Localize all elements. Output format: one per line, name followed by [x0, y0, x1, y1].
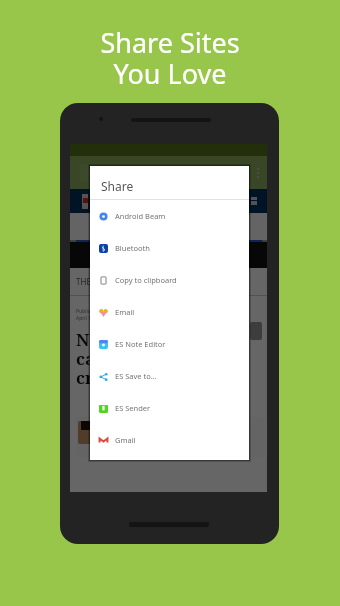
staticText: THE LATEST	[76, 276, 120, 287]
staticText: Email	[115, 307, 135, 317]
button[interactable]: ES Note Editor	[90, 328, 249, 360]
staticText: Published on April 10	[76, 308, 107, 322]
staticText: NEW cars crash	[76, 328, 124, 389]
staticText: Bluetooth	[115, 243, 150, 253]
button[interactable]: ES Sender	[90, 392, 249, 424]
button[interactable]: Copy to clipboard	[90, 264, 249, 296]
staticText: Gmail	[115, 435, 136, 445]
staticText: Share Sites You Love	[0, 24, 340, 92]
staticText: ES Note Editor	[115, 339, 166, 349]
staticText: ES Sender	[115, 403, 151, 413]
button[interactable]: Bluetooth	[90, 232, 249, 264]
button[interactable]: ES Save to...	[90, 360, 249, 392]
staticText: Copy to clipboard	[115, 275, 177, 285]
button[interactable]: Gmail	[90, 424, 249, 456]
button[interactable]: Email	[90, 296, 249, 328]
staticText: ES Save to...	[115, 371, 157, 381]
staticText: Android Beam	[115, 211, 166, 221]
staticText: Share	[101, 178, 134, 194]
button[interactable]: Android Beam	[90, 200, 249, 232]
